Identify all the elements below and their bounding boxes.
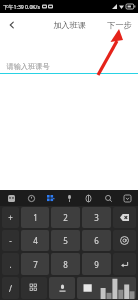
button[interactable]: 2	[51, 207, 80, 228]
staticText: 加入班课	[53, 20, 86, 30]
staticText: .	[9, 259, 12, 270]
staticText: 9	[94, 259, 99, 270]
button[interactable]: Back	[0, 13, 24, 37]
button[interactable]: 下一步	[101, 13, 138, 37]
button[interactable]: 请输入班课号	[0, 60, 138, 73]
button[interactable]: +	[2, 207, 19, 228]
button[interactable]: 3	[82, 207, 111, 228]
button[interactable]: 7	[21, 253, 49, 275]
staticText: /	[9, 283, 12, 294]
staticText: 请输入班课号	[6, 62, 50, 71]
button[interactable]: 9	[82, 253, 111, 275]
button[interactable]: Hide keyboard	[119, 190, 135, 206]
button[interactable]: 6	[82, 230, 111, 251]
staticText: +	[8, 212, 13, 223]
button[interactable]: Emoji	[3, 190, 19, 206]
button[interactable]: Search	[100, 190, 116, 206]
staticText: 下午1:39	[3, 3, 24, 10]
button[interactable]: Voice	[61, 190, 77, 206]
button[interactable]: Translate	[80, 190, 96, 206]
button[interactable]: /	[2, 277, 19, 299]
staticText: 0.0K/s	[25, 3, 40, 10]
staticText: 1	[33, 212, 38, 223]
button[interactable]: Voice input	[49, 277, 75, 299]
button[interactable]: Symbols	[21, 277, 47, 299]
button[interactable]: .	[2, 253, 19, 275]
button[interactable]: Enter	[113, 253, 136, 275]
button[interactable]: Settings	[23, 190, 39, 206]
button[interactable]: 4	[21, 230, 49, 251]
button[interactable]: Space	[77, 277, 136, 299]
staticText: 5	[63, 235, 68, 246]
button[interactable]: 8	[51, 253, 80, 275]
button[interactable]: 5	[51, 230, 80, 251]
button[interactable]: At	[113, 230, 136, 251]
button[interactable]: 1	[21, 207, 49, 228]
button[interactable]: -	[2, 230, 19, 251]
staticText: 2	[63, 212, 68, 223]
staticText: 6	[94, 235, 99, 246]
staticText: 下一步	[107, 20, 132, 30]
button[interactable]: Backspace	[113, 207, 136, 228]
staticText: 7	[33, 259, 38, 270]
staticText: 3	[94, 212, 99, 223]
staticText: 8	[63, 259, 68, 270]
staticText: 4	[33, 235, 38, 246]
staticText: -	[9, 235, 12, 246]
button[interactable]: Switch keyboard	[42, 190, 58, 206]
